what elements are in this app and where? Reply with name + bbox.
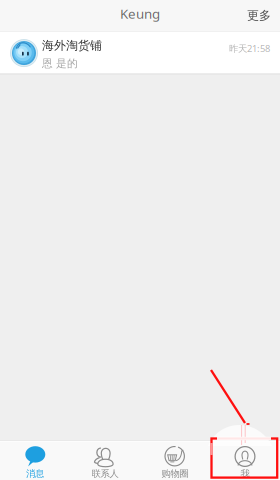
staticText: Keung [120, 5, 160, 22]
staticText: 消息 [26, 468, 44, 479]
button[interactable]: 消息 [0, 442, 70, 480]
button[interactable]: 购物圈 [140, 442, 210, 480]
button[interactable]: 我 [210, 442, 280, 480]
staticText: 更多 [247, 8, 271, 23]
staticText: 恩 是的 [42, 57, 78, 70]
button[interactable]: 海外淘货铺 [0, 31, 280, 73]
staticText: 联系人 [91, 468, 118, 479]
staticText: 我 [240, 468, 249, 479]
staticText: 昨天21:58 [229, 42, 270, 54]
staticText: 购物圈 [161, 468, 188, 479]
button[interactable]: 更多 [231, 0, 280, 31]
staticText: 海外淘货铺 [42, 38, 102, 53]
button[interactable]: 联系人 [70, 442, 140, 480]
